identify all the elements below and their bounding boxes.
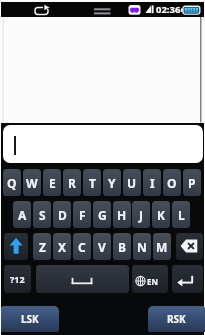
staticText: ?12 [10, 273, 25, 285]
button[interactable]: J [132, 201, 150, 228]
staticText: M [156, 239, 168, 255]
button[interactable] [36, 265, 129, 293]
button[interactable]: B [113, 233, 131, 260]
staticText: Z [39, 239, 46, 255]
staticText: Q [7, 175, 17, 191]
button[interactable] [172, 265, 203, 293]
button[interactable]: ?12 [4, 265, 31, 293]
button[interactable]: C [73, 233, 91, 260]
staticText: EN [147, 276, 158, 287]
button[interactable]: Q [3, 169, 21, 196]
staticText: Y [108, 175, 116, 191]
staticText: H [117, 207, 127, 223]
button[interactable]: R [63, 169, 81, 196]
button[interactable]: G [93, 201, 111, 228]
staticText: S [39, 207, 46, 223]
staticText: T [89, 175, 96, 191]
button[interactable]: M [153, 233, 171, 260]
staticText: N [137, 239, 147, 255]
button[interactable] [176, 233, 203, 260]
staticText: L [178, 207, 185, 223]
staticText: F [79, 207, 86, 223]
staticText: LSK [21, 312, 39, 326]
button[interactable]: F [73, 201, 91, 228]
button[interactable]: U [123, 169, 141, 196]
staticText: J [139, 207, 143, 223]
button[interactable]: RSK [148, 306, 205, 332]
button[interactable]: O [163, 169, 181, 196]
staticText: C [78, 239, 86, 255]
staticText: X [58, 239, 67, 255]
button[interactable] [3, 125, 203, 163]
staticText: R [68, 175, 76, 191]
button[interactable]: H [113, 201, 131, 228]
button[interactable]: I [143, 169, 161, 196]
staticText: G [98, 207, 107, 223]
button[interactable]: E [43, 169, 61, 196]
staticText: 02:36 [156, 3, 181, 15]
staticText: P [188, 175, 196, 191]
button[interactable] [4, 233, 28, 260]
staticText: V [98, 239, 106, 255]
button[interactable]: LSK [1, 306, 59, 332]
staticText: W [26, 175, 38, 191]
button[interactable]: A [13, 201, 31, 228]
button[interactable]: L [172, 201, 190, 228]
button[interactable]: Z [33, 233, 51, 260]
staticText: U [127, 175, 137, 191]
staticText: I [150, 175, 155, 191]
button[interactable] [132, 265, 168, 293]
button[interactable]: Y [103, 169, 121, 196]
button[interactable]: V [93, 233, 111, 260]
button[interactable]: X [53, 233, 71, 260]
button[interactable]: K [152, 201, 170, 228]
staticText: O [167, 175, 177, 191]
staticText: B [118, 239, 126, 255]
button[interactable]: S [33, 201, 51, 228]
staticText: A [18, 207, 27, 223]
button[interactable]: N [133, 233, 151, 260]
button[interactable]: T [83, 169, 101, 196]
button[interactable]: P [183, 169, 201, 196]
button[interactable]: D [53, 201, 71, 228]
staticText: E [49, 175, 56, 191]
button[interactable]: W [23, 169, 41, 196]
staticText: RSK [167, 312, 186, 326]
staticText: K [157, 207, 165, 223]
staticText: D [58, 207, 67, 223]
